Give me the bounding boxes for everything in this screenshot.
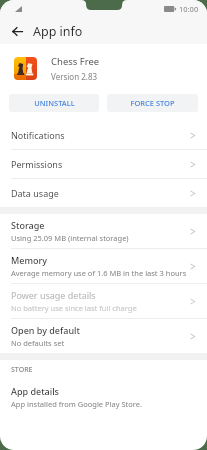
button[interactable]: Storage: [0, 214, 207, 248]
staticText: No battery use since last full charge: [11, 303, 137, 313]
staticText: Storage: [11, 219, 45, 231]
button[interactable]: Power usage details: [0, 284, 207, 318]
staticText: Notifications: [11, 129, 190, 141]
staticText: Permissions: [11, 158, 190, 170]
staticText: Chess Free: [51, 55, 100, 68]
staticText: 10:00: [179, 4, 199, 14]
staticText: UNINSTALL: [34, 98, 75, 108]
button[interactable]: Data usage: [0, 179, 207, 207]
button[interactable]: Open by default: [0, 319, 207, 353]
staticText: Using 25.09 MB (internal storage): [11, 233, 129, 243]
button[interactable]: Notifications: [0, 121, 207, 149]
staticText: STORE: [11, 365, 33, 375]
staticText: Open by default: [11, 324, 80, 336]
staticText: Average memory use of 1.6 MB in the last…: [11, 268, 187, 278]
staticText: Memory: [11, 254, 48, 266]
button[interactable]: FORCE STOP: [107, 94, 198, 112]
staticText: Version 2.83: [51, 71, 98, 82]
staticText: Power usage details: [11, 289, 96, 301]
staticText: FORCE STOP: [130, 98, 175, 108]
button[interactable]: Permissions: [0, 150, 207, 178]
button[interactable]: Back: [7, 21, 27, 41]
button[interactable]: UNINSTALL: [9, 94, 99, 112]
button[interactable]: Memory: [0, 249, 207, 283]
staticText: App info: [33, 23, 83, 40]
staticText: App details: [11, 385, 59, 397]
staticText: No defaults set: [11, 338, 65, 348]
staticText: Data usage: [11, 187, 190, 199]
staticText: App installed from Google Play Store.: [11, 399, 143, 409]
button[interactable]: App details: [0, 380, 207, 414]
